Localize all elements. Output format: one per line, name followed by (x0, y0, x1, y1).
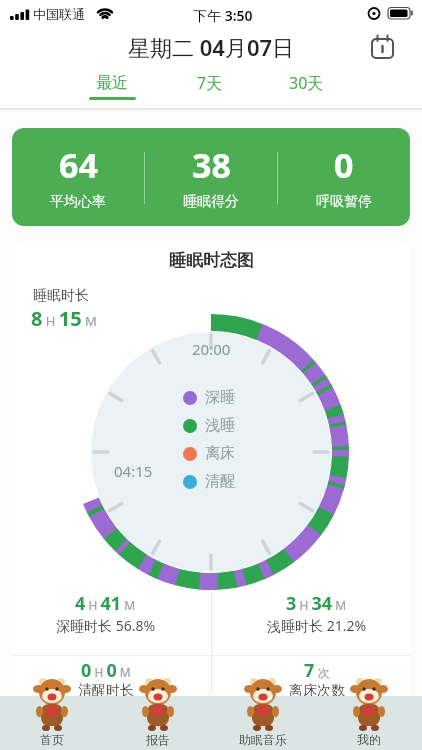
staticText: 深睡时长 56.8% (56, 616, 156, 635)
staticText: 睡眠时态图 (169, 250, 254, 271)
button[interactable]: 助眠音乐 (211, 678, 316, 750)
staticText: 首页 (40, 732, 64, 747)
button[interactable]: 我的 (317, 678, 422, 750)
staticText: 清醒 (205, 472, 235, 491)
staticText: 睡眠时长 (33, 287, 89, 305)
staticText: 0 (334, 142, 354, 188)
staticText: 浅睡 (205, 416, 235, 435)
button[interactable]: 7天 (0, 0, 60, 26)
staticText: 浅睡时长 21.2% (267, 616, 367, 635)
staticText: 7 次 (304, 658, 330, 683)
staticText: 深睡 (205, 388, 235, 407)
staticText: 7天 (197, 72, 223, 94)
staticText: 30天 (289, 72, 324, 94)
staticText: 我的 (357, 732, 381, 747)
staticText: 报告 (146, 732, 170, 747)
staticText: 4 H 41 M (75, 591, 136, 616)
button[interactable]: 首页 (0, 678, 105, 750)
staticText: 助眠音乐 (239, 732, 287, 747)
staticText: 离床次数 (289, 682, 345, 700)
staticText: 3 H 34 M (286, 591, 347, 616)
staticText: 8 H 15 M (31, 305, 97, 332)
button[interactable] (371, 35, 395, 59)
staticText: 清醒时长 (78, 682, 134, 700)
button[interactable]: 0 (278, 128, 410, 226)
staticText: 64 (59, 142, 98, 188)
staticText: 最近 (96, 73, 128, 93)
button[interactable]: 30天 (0, 0, 60, 26)
button[interactable]: 38 (145, 128, 277, 226)
staticText: 睡眠得分 (183, 193, 239, 211)
staticText: 呼吸暂停 (316, 193, 372, 211)
staticText: 星期二 04月07日 (128, 32, 295, 62)
button[interactable]: 报告 (106, 678, 211, 750)
staticText: 平均心率 (50, 193, 106, 211)
staticText: 20:00 (192, 339, 231, 359)
button[interactable]: 最近 (0, 0, 60, 26)
button[interactable]: 64 (12, 128, 144, 226)
staticText: 下午 3:50 (193, 6, 253, 25)
staticText: 0 H 0 M (81, 658, 131, 683)
staticText: 离床 (205, 444, 235, 463)
staticText: 04:15 (114, 461, 153, 481)
staticText: 中国联通 (33, 6, 85, 22)
staticText: 38 (192, 142, 231, 188)
